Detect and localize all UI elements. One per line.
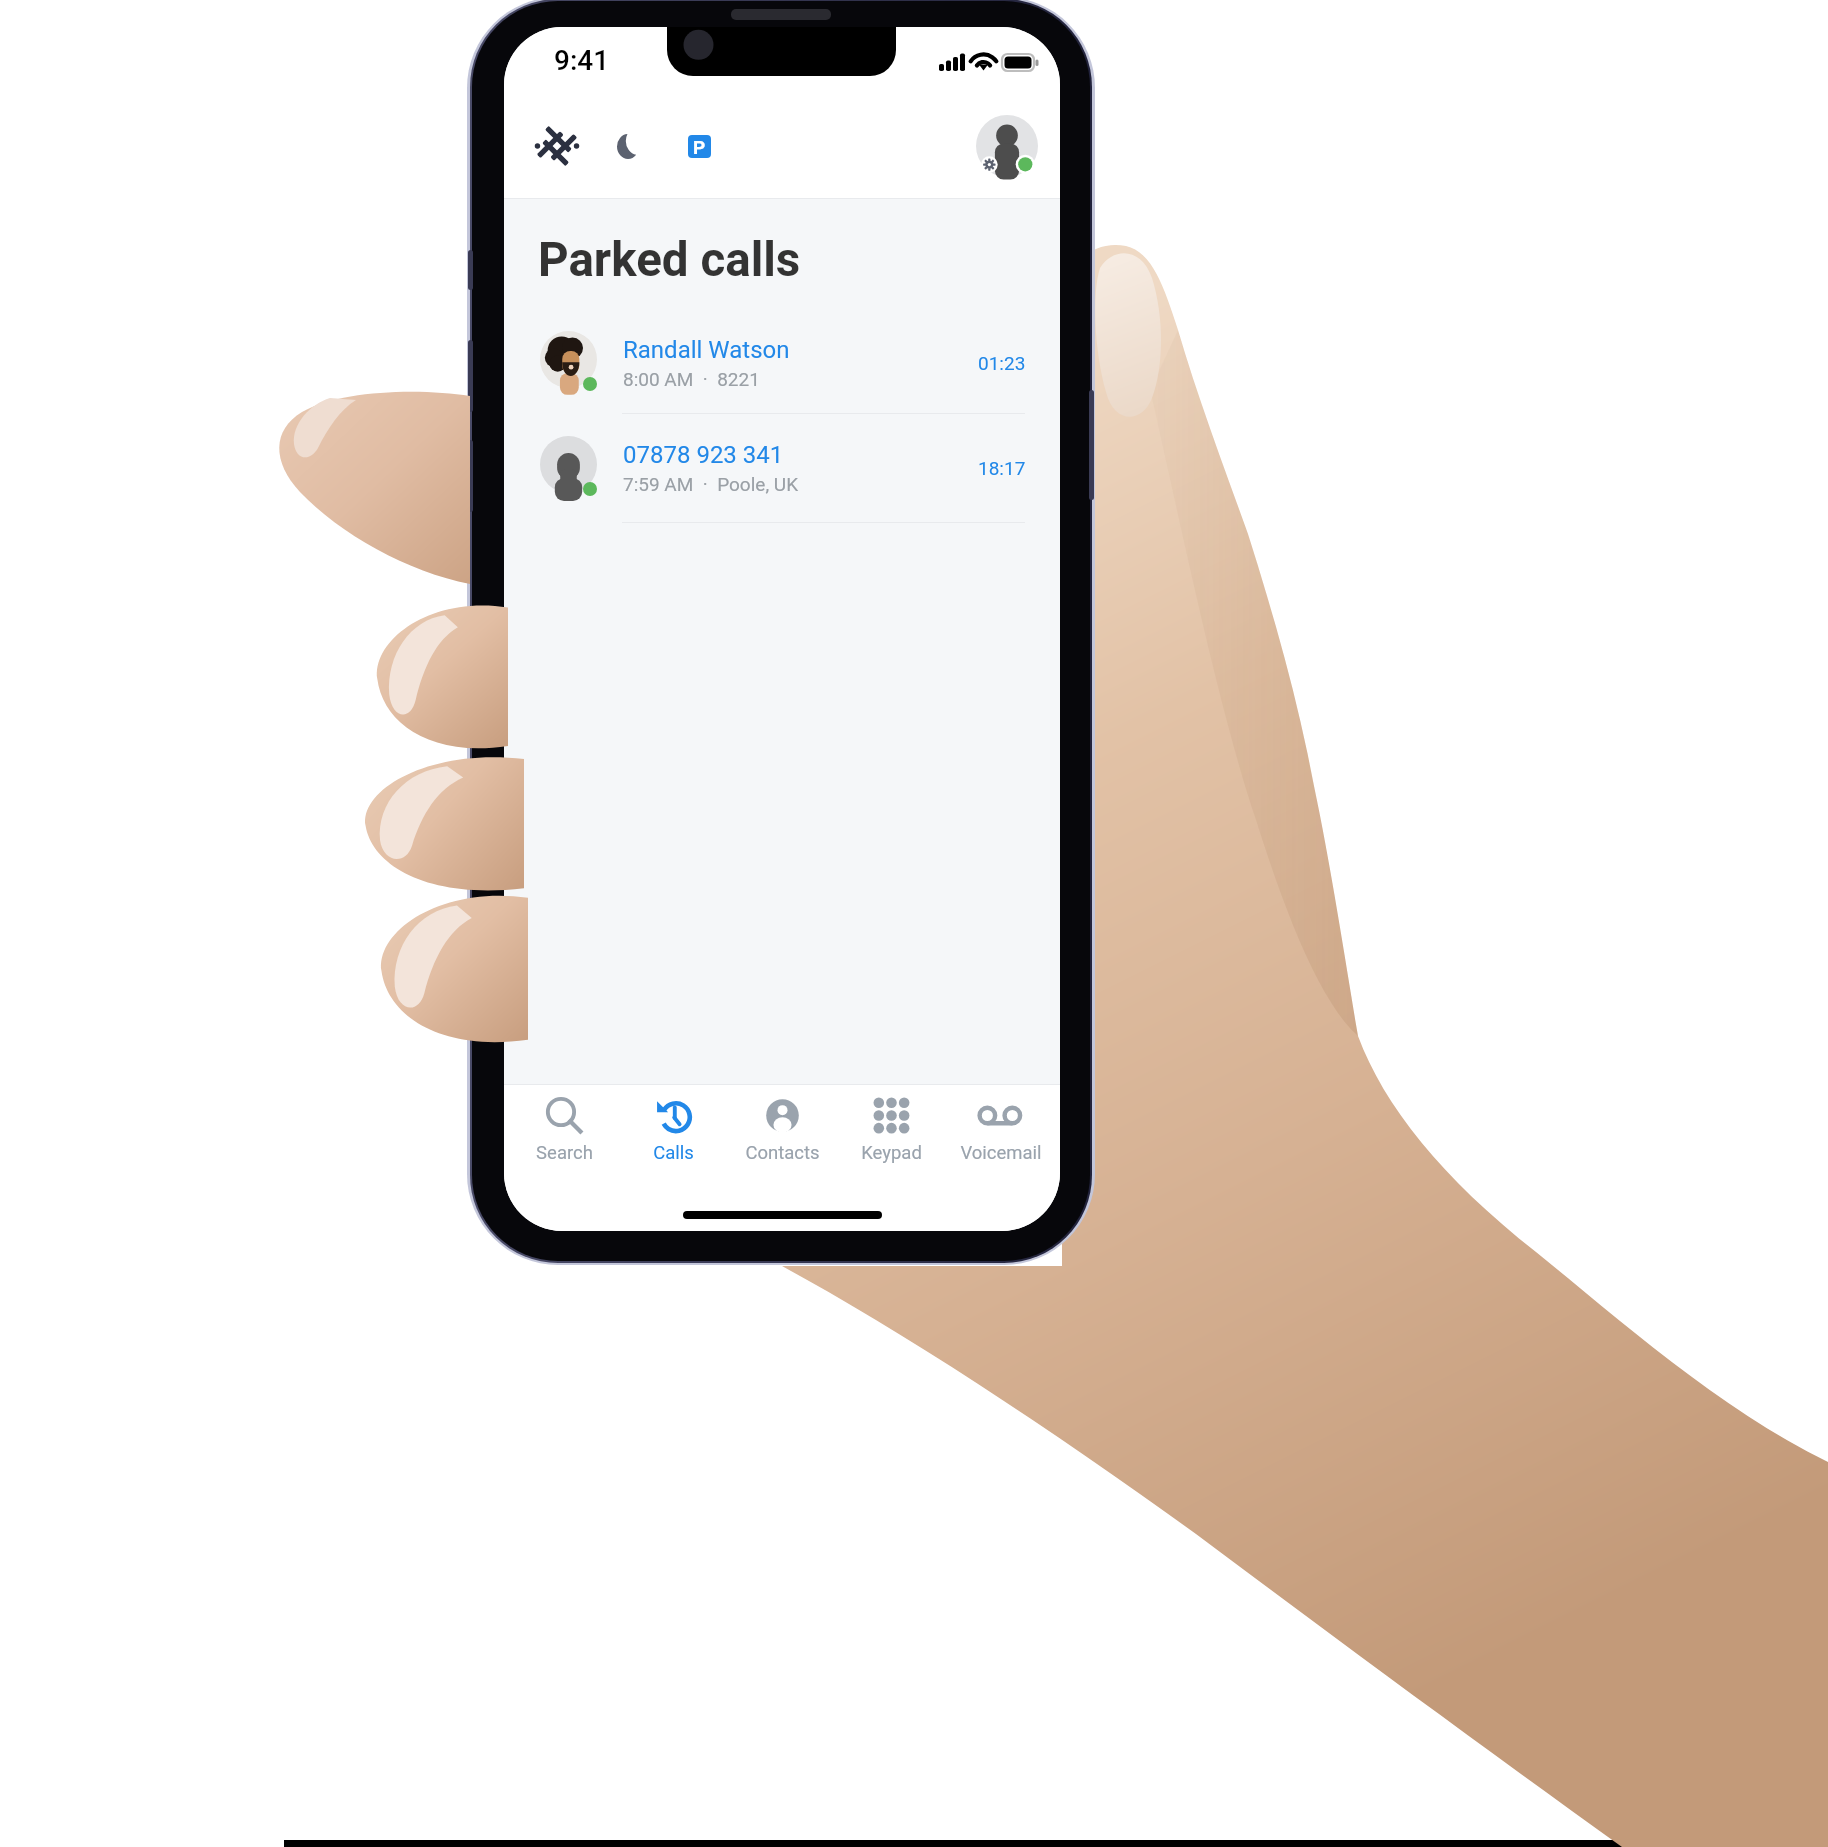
staticText: Voicemail bbox=[960, 1142, 1042, 1164]
staticText: 7:59 AM · Poole, UK bbox=[623, 473, 799, 495]
staticText: Randall Watson bbox=[623, 336, 790, 364]
staticText: P bbox=[693, 136, 706, 158]
button[interactable]: Voicemail bbox=[946, 1085, 1055, 1200]
staticText: 18:17 bbox=[978, 457, 1026, 479]
button[interactable]: 07878 923 341 bbox=[504, 418, 1060, 518]
staticText: 01:23 bbox=[978, 352, 1026, 374]
button[interactable]: Keypad bbox=[837, 1085, 946, 1200]
staticText: Contacts bbox=[745, 1142, 820, 1164]
staticText: 07878 923 341 bbox=[623, 441, 784, 469]
button[interactable]: Contacts bbox=[728, 1085, 837, 1200]
button[interactable]: Randall Watson bbox=[504, 313, 1060, 413]
button[interactable]: Do not disturb bbox=[599, 117, 657, 175]
staticText: Calls bbox=[653, 1142, 694, 1164]
button[interactable]: App menu bbox=[528, 117, 586, 175]
staticText: Search bbox=[536, 1142, 593, 1164]
button[interactable]: Parked calls bbox=[670, 117, 728, 175]
staticText: 9:41 bbox=[554, 44, 610, 77]
staticText: 8:00 AM · 8221 bbox=[623, 368, 760, 390]
staticText: Keypad bbox=[861, 1142, 922, 1164]
button[interactable]: Search bbox=[509, 1085, 619, 1200]
button[interactable]: Calls bbox=[619, 1085, 728, 1200]
button[interactable]: Profile and settings bbox=[971, 110, 1043, 182]
staticText: Parked calls bbox=[538, 232, 801, 288]
